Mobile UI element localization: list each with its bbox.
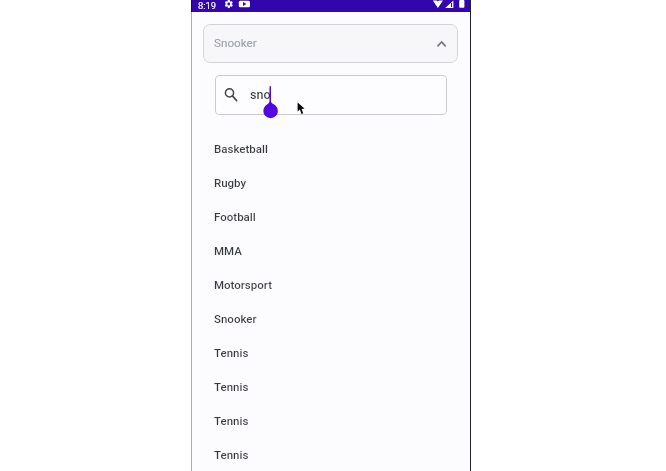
other: Collapse bbox=[437, 41, 447, 47]
staticText: 8:19 bbox=[198, 0, 217, 11]
button[interactable]: Tennis bbox=[191, 437, 470, 471]
staticText: Snooker bbox=[214, 312, 257, 325]
staticText: Tennis bbox=[214, 380, 249, 393]
button[interactable]: MMA bbox=[191, 233, 470, 267]
button[interactable]: Snooker bbox=[191, 301, 470, 335]
staticText: Football bbox=[214, 210, 256, 223]
other: Text cursor bbox=[262, 85, 280, 121]
staticText: Tennis bbox=[214, 414, 249, 427]
staticText: Rugby bbox=[214, 176, 247, 189]
button[interactable]: Snooker bbox=[203, 24, 458, 63]
staticText: Basketball bbox=[214, 142, 268, 155]
staticText: Motorsport bbox=[214, 278, 272, 291]
button[interactable]: Rugby bbox=[191, 165, 470, 199]
staticText: Tennis bbox=[214, 448, 249, 461]
button[interactable]: Tennis bbox=[191, 369, 470, 403]
staticText: Tennis bbox=[214, 346, 249, 359]
staticText: sno bbox=[250, 87, 271, 102]
button[interactable]: sno bbox=[215, 75, 447, 115]
button[interactable]: Motorsport bbox=[191, 267, 470, 301]
staticText: Snooker bbox=[214, 36, 257, 50]
staticText: MMA bbox=[214, 244, 242, 257]
button[interactable]: Football bbox=[191, 199, 470, 233]
button[interactable]: Tennis bbox=[191, 335, 470, 369]
other: Pointer bbox=[297, 102, 305, 115]
button[interactable]: Tennis bbox=[191, 403, 470, 437]
button[interactable]: Basketball bbox=[191, 131, 470, 165]
